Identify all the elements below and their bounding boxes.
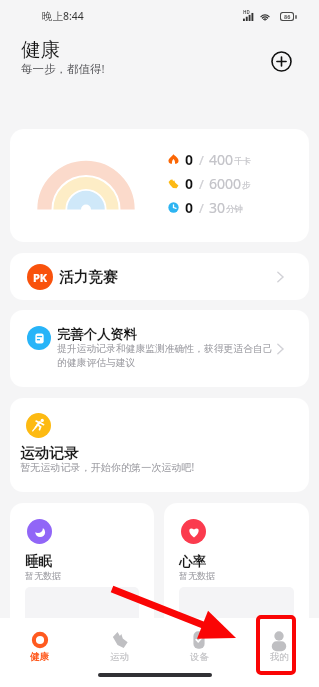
staticText: 分钟: [226, 204, 243, 215]
staticText: 健康: [21, 37, 60, 62]
staticText: 运动: [110, 651, 129, 663]
button[interactable]: PK: [10, 253, 309, 300]
staticText: 活力竞赛: [59, 268, 118, 287]
staticText: 步: [242, 180, 251, 191]
button[interactable]: 设备: [159, 618, 239, 687]
staticText: 暂无数据: [179, 570, 215, 581]
button[interactable]: 心率: [164, 503, 309, 638]
staticText: 我的: [270, 651, 289, 663]
staticText: 0: [185, 198, 194, 217]
staticText: /: [199, 199, 204, 217]
staticText: /: [199, 175, 204, 193]
staticText: 400: [209, 150, 234, 169]
staticText: 0: [185, 174, 194, 193]
button[interactable]: Add: [268, 48, 294, 74]
staticText: 暂无运动记录，开始你的第一次运动吧!: [20, 460, 195, 474]
staticText: 完善个人资料: [57, 326, 137, 343]
staticText: 暂无数据: [25, 570, 61, 581]
staticText: 6000: [209, 174, 242, 193]
staticText: 运动记录: [20, 444, 79, 462]
staticText: 每一步，都值得!: [21, 61, 105, 77]
staticText: HD: [243, 9, 250, 15]
button[interactable]: 健康: [0, 618, 79, 687]
staticText: /: [199, 151, 204, 169]
staticText: 0: [185, 150, 194, 169]
staticText: 心率: [179, 553, 206, 570]
staticText: 提升运动记录和健康监测准确性，获得更适合自己 的健康评估与建议: [57, 343, 273, 369]
staticText: PK: [33, 270, 48, 285]
button[interactable]: 运动: [79, 618, 159, 687]
staticText: 86: [284, 13, 291, 20]
button[interactable]: 我的: [239, 618, 319, 687]
button[interactable]: 运动记录: [10, 398, 309, 492]
staticText: 30: [209, 198, 226, 217]
staticText: 睡眠: [25, 553, 52, 570]
staticText: 健康: [30, 651, 49, 663]
button[interactable]: 完善个人资料: [10, 310, 309, 387]
staticText: 设备: [190, 651, 209, 663]
staticText: 晚上8:44: [42, 9, 84, 23]
staticText: 千卡: [234, 156, 251, 167]
button[interactable]: 睡眠: [10, 503, 154, 638]
button[interactable]: 0: [10, 129, 309, 242]
